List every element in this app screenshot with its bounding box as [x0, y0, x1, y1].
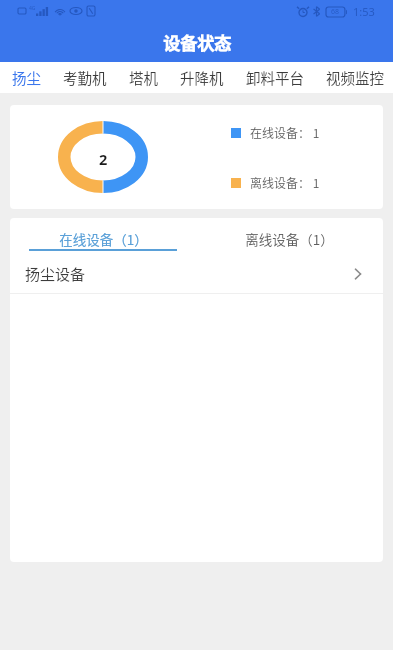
button[interactable]: 视频监控 [326, 62, 384, 93]
staticText: 升降机 [180, 67, 224, 88]
staticText: 卸料平台 [246, 67, 304, 88]
staticText: 1:53 [353, 4, 375, 19]
staticText: 设备状态 [163, 30, 231, 55]
staticText: 4G [29, 5, 36, 12]
button[interactable]: 离线设备（1） [196, 218, 383, 254]
button[interactable]: 在线设备（1） [10, 218, 196, 254]
button[interactable]: 卸料平台 [246, 62, 304, 93]
button[interactable]: 塔机 [129, 62, 158, 93]
button[interactable]: 扬尘设备 [10, 254, 383, 293]
staticText: 塔机 [129, 67, 158, 88]
staticText: 考勤机 [63, 67, 107, 88]
button[interactable]: 扬尘 [12, 62, 41, 93]
staticText: 离线设备： 1 [250, 174, 320, 191]
staticText: 扬尘 [12, 67, 41, 88]
button[interactable]: 考勤机 [63, 62, 107, 93]
staticText: 在线设备（1） [59, 229, 148, 249]
staticText: 在线设备： 1 [250, 124, 320, 141]
staticText: 68 [331, 7, 340, 17]
other: 查看详情 [354, 268, 362, 280]
staticText: 视频监控 [326, 67, 384, 88]
staticText: 扬尘设备 [25, 263, 86, 285]
staticText: 离线设备（1） [245, 229, 334, 249]
staticText: 2 [99, 149, 108, 169]
button[interactable]: 升降机 [180, 62, 224, 93]
